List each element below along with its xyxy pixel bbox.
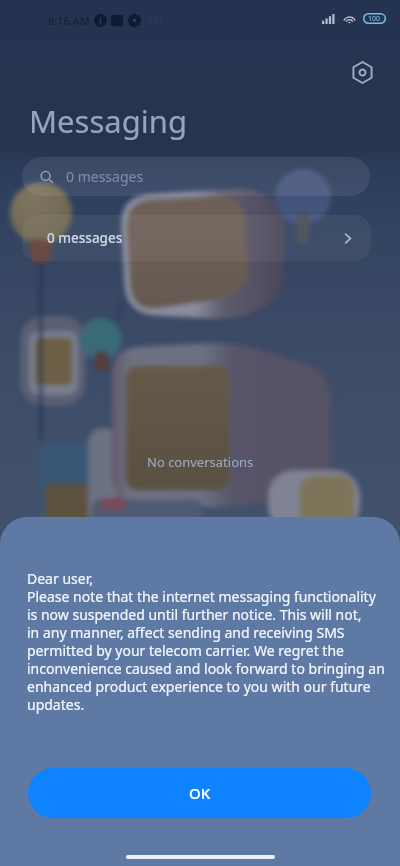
staticText: • • • xyxy=(149,15,163,26)
staticText: Messaging xyxy=(29,100,187,142)
staticText: 0 messages xyxy=(47,229,123,247)
button[interactable]: 0 messages xyxy=(22,157,370,196)
button[interactable]: Settings xyxy=(341,51,383,93)
staticText: 0 messages xyxy=(66,167,144,186)
staticText: 100 xyxy=(368,14,381,24)
staticText: 8:16 AM xyxy=(48,13,90,28)
staticText: Dear user, Please note that the internet… xyxy=(27,569,385,714)
staticText: No conversations xyxy=(147,453,254,471)
staticText: OK xyxy=(189,783,211,803)
button[interactable]: 0 messages xyxy=(22,215,371,261)
button[interactable]: OK xyxy=(28,768,371,818)
